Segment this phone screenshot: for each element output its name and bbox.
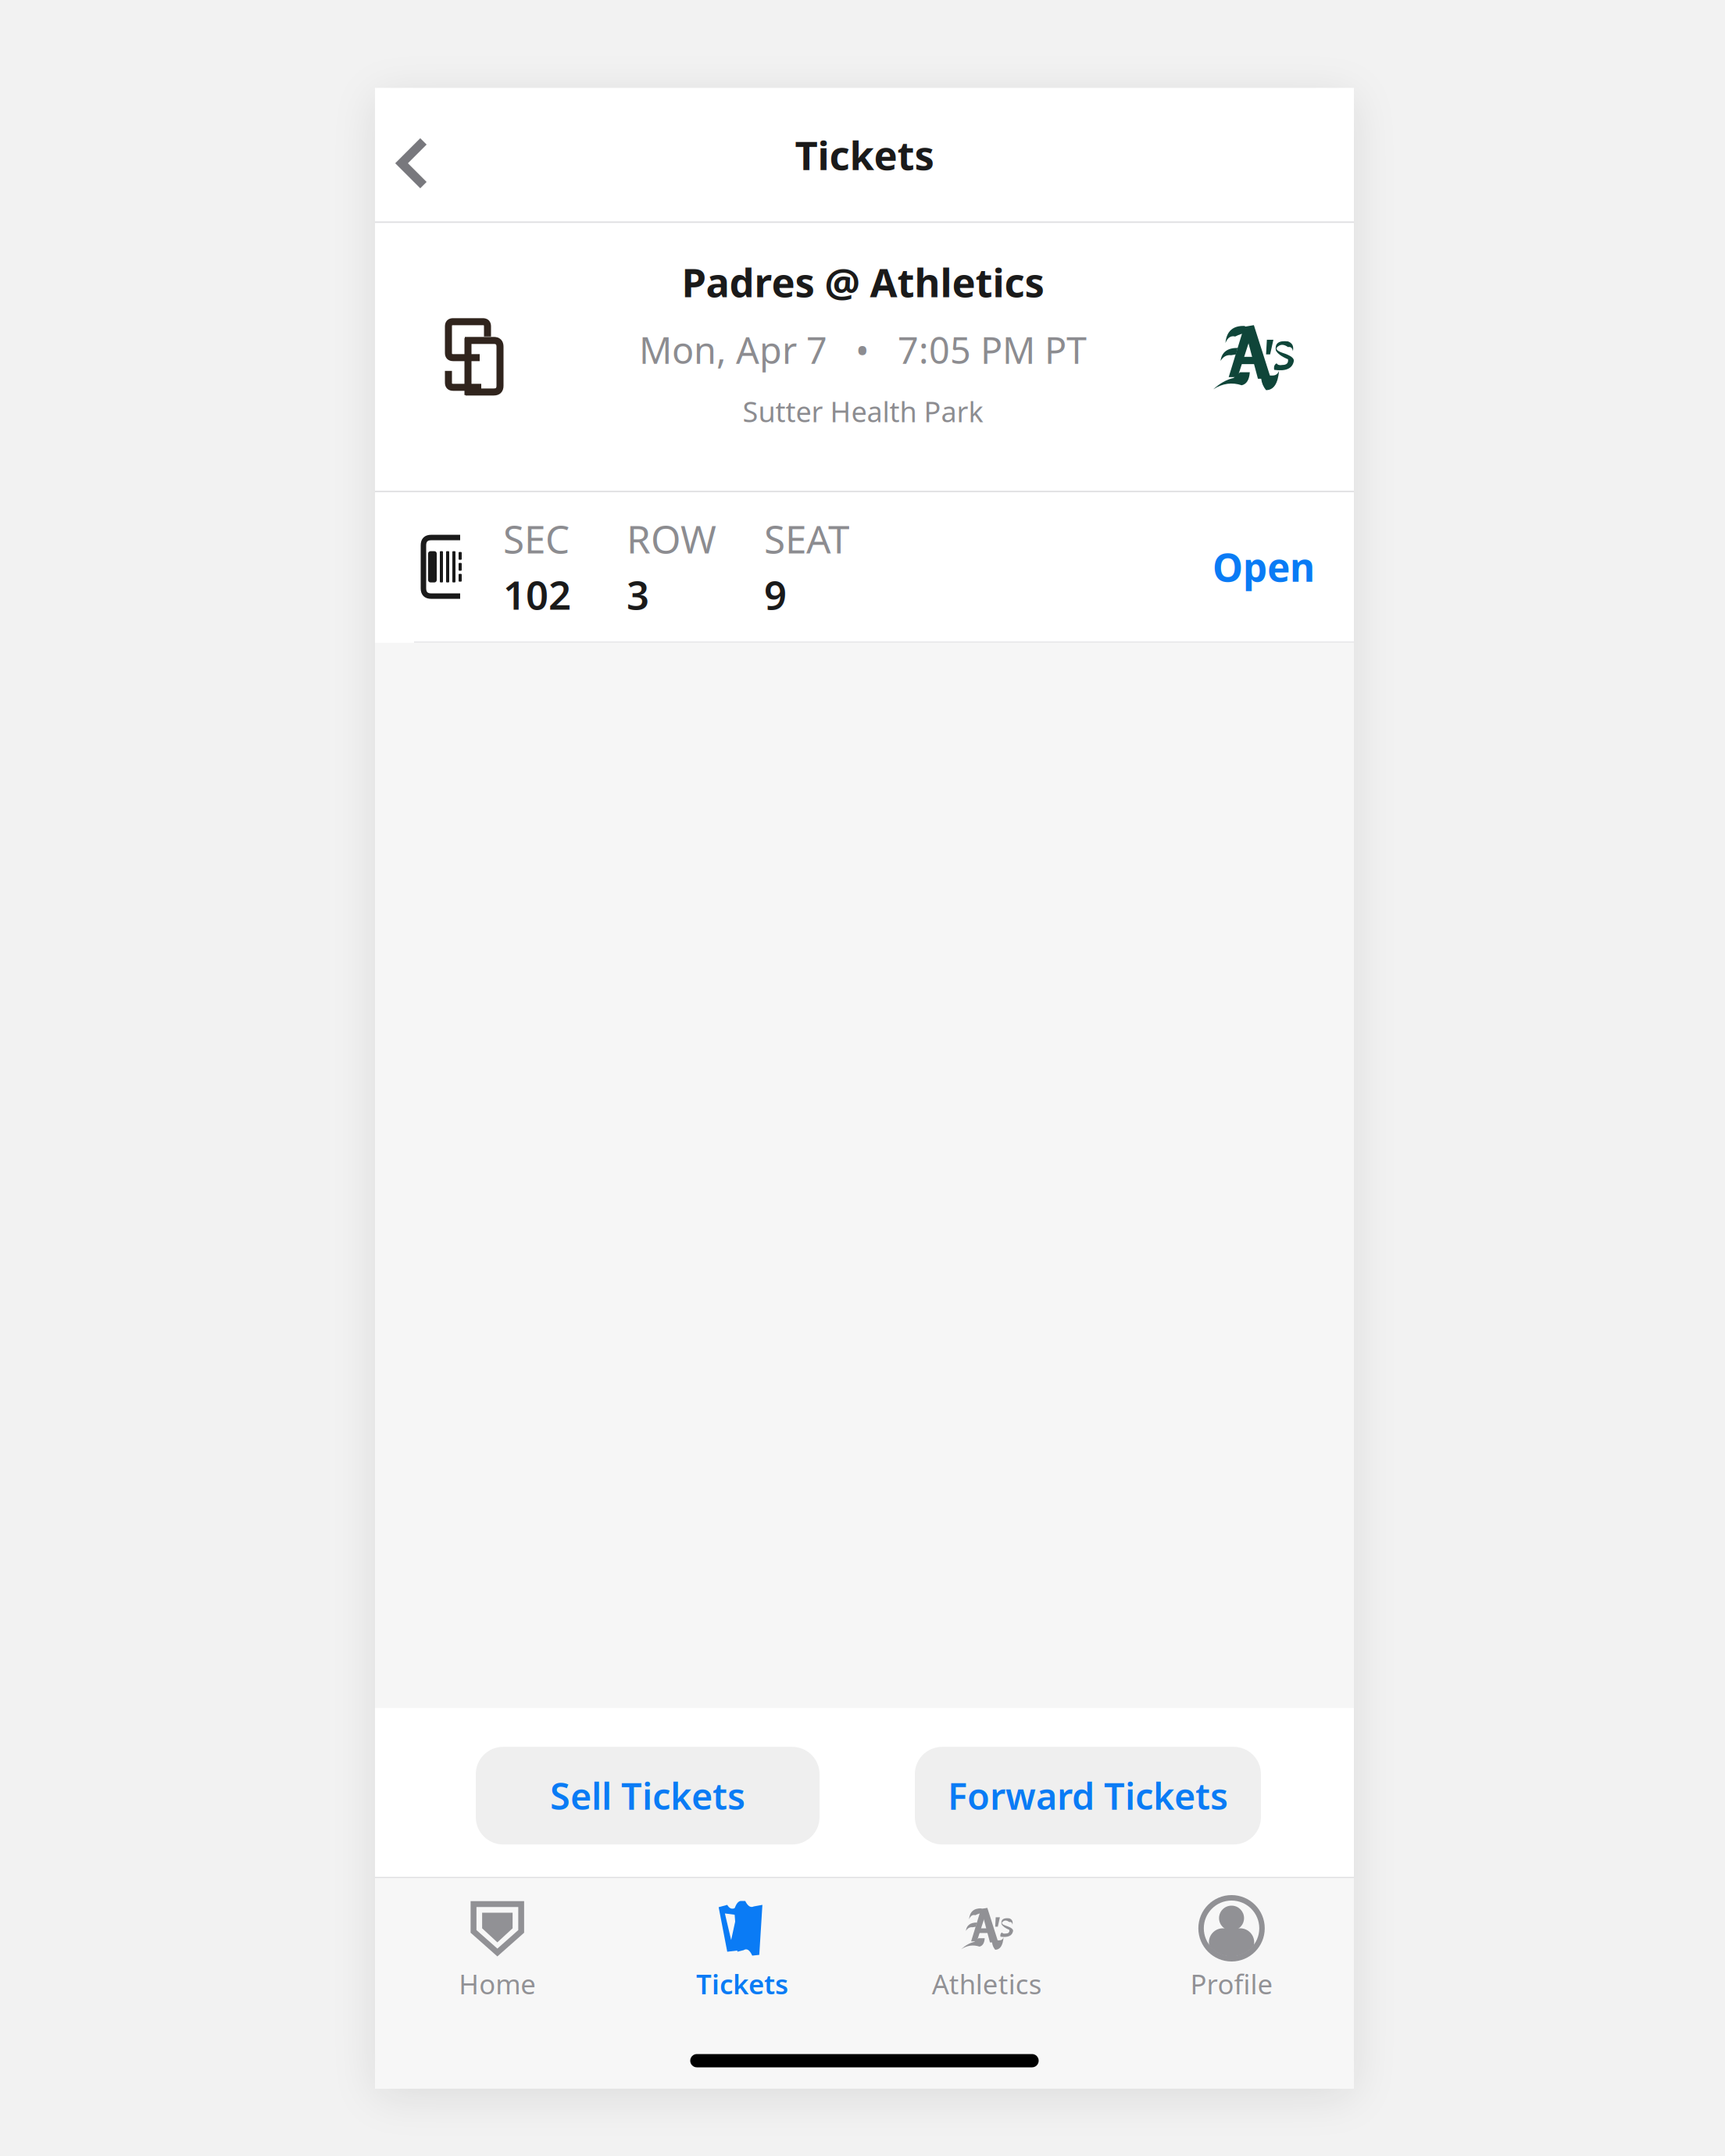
button[interactable]: Sell Tickets (476, 1747, 820, 1844)
staticText: Open (1212, 541, 1315, 592)
button[interactable]: Profile (1109, 1878, 1354, 2002)
button[interactable]: Athletics (864, 1878, 1109, 2002)
button[interactable]: SEC (375, 492, 1354, 641)
staticText: Forward Tickets (948, 1771, 1228, 1820)
staticText: Tickets (795, 128, 934, 181)
staticText: Padres @ Athletics (682, 256, 1044, 308)
staticText: ROW (627, 513, 716, 564)
staticText: Sell Tickets (550, 1771, 745, 1820)
staticText: Tickets (696, 1966, 788, 2002)
staticText: Athletics (932, 1966, 1042, 2002)
staticText: SEC (503, 513, 570, 564)
button[interactable]: Home (375, 1878, 620, 2002)
staticText: Profile (1190, 1966, 1273, 2002)
button[interactable]: Forward Tickets (915, 1747, 1261, 1844)
staticText: Sutter Health Park (742, 393, 983, 430)
button[interactable]: Tickets (620, 1878, 864, 2002)
staticText: Mon, Apr 7 • 7:05 PM PT (639, 325, 1087, 374)
button[interactable]: Back (375, 97, 461, 212)
staticText: 102 (503, 568, 571, 621)
staticText: SEAT (764, 513, 849, 564)
staticText: 3 (627, 568, 649, 621)
staticText: 9 (764, 568, 787, 621)
staticText: Home (459, 1966, 536, 2002)
